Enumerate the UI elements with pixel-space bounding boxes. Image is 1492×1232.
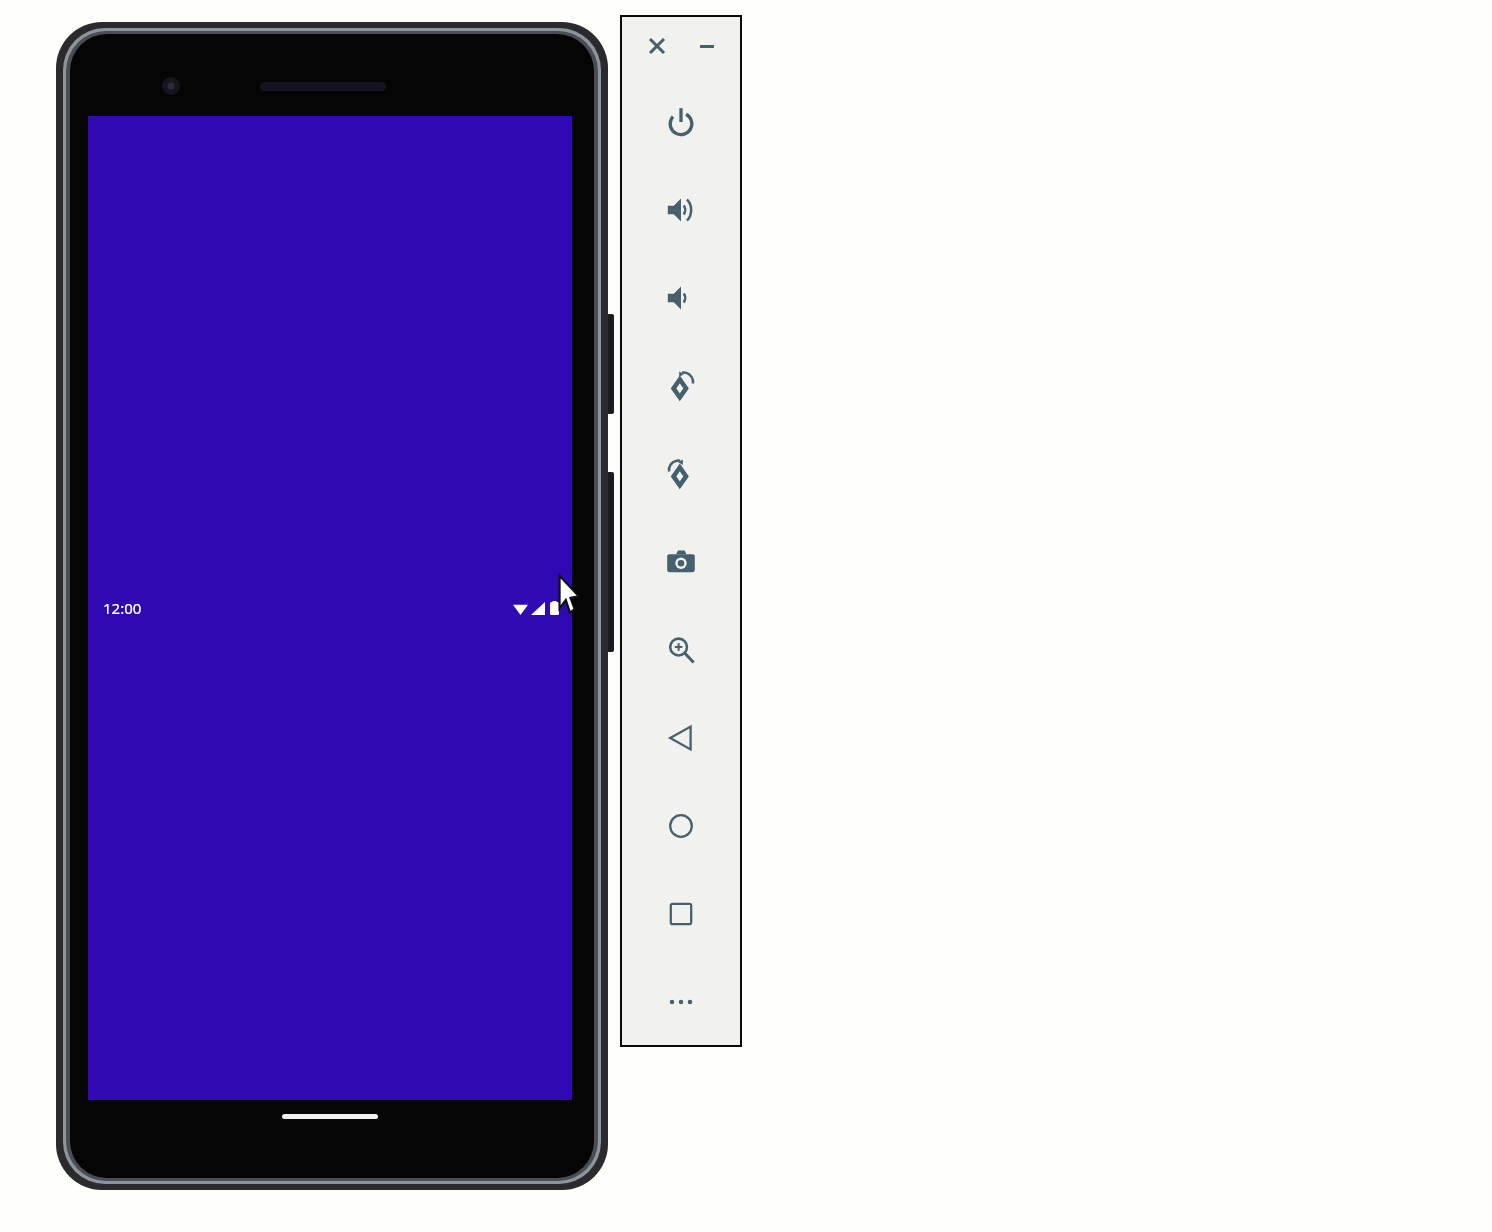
- button[interactable]: Rotate right: [655, 448, 707, 500]
- button[interactable]: Back: [655, 712, 707, 764]
- staticText: 12:00: [103, 598, 142, 618]
- button[interactable]: Minimize: [692, 31, 722, 61]
- button[interactable]: Volume up: [655, 184, 707, 236]
- button[interactable]: Take screenshot: [655, 536, 707, 588]
- button[interactable]: Home: [655, 800, 707, 852]
- button[interactable]: Volume down: [655, 272, 707, 324]
- button[interactable]: Rotate left: [655, 360, 707, 412]
- button[interactable]: Power: [655, 96, 707, 148]
- button[interactable]: Close: [642, 31, 672, 61]
- button[interactable]: Zoom: [655, 624, 707, 676]
- button[interactable]: More: [655, 976, 707, 1028]
- button[interactable]: Overview: [655, 888, 707, 940]
